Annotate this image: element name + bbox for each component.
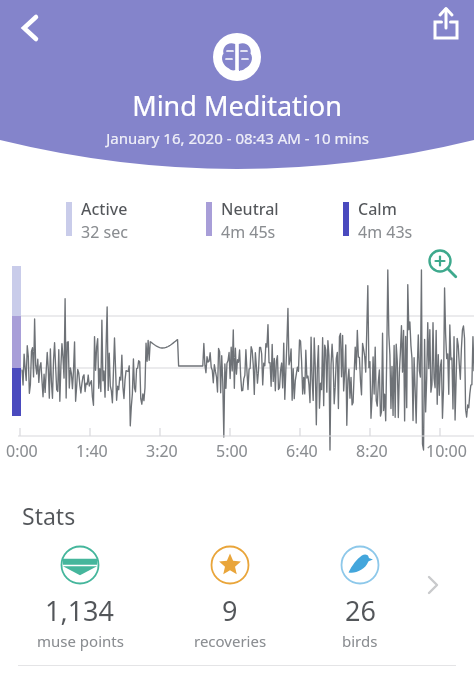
staticText: 1,134 [45, 592, 115, 629]
button[interactable]: More stats [420, 545, 474, 625]
button[interactable]: 26 [300, 545, 420, 651]
staticText: birds [342, 631, 378, 651]
button[interactable]: Share [424, 2, 468, 46]
staticText: 4m 43s [358, 221, 413, 243]
staticText: Stats [22, 500, 76, 531]
button[interactable]: Back [8, 6, 52, 50]
staticText: 26 [345, 592, 376, 629]
staticText: muse points [37, 631, 124, 651]
staticText: Calm [358, 198, 397, 220]
staticText: 5:00 [216, 440, 248, 462]
staticText: 32 sec [81, 221, 128, 243]
staticText: 4m 45s [221, 221, 276, 243]
staticText: 9 [222, 592, 238, 629]
staticText: 3:20 [146, 440, 178, 462]
button[interactable]: 9 [160, 545, 300, 651]
staticText: 1:40 [76, 440, 108, 462]
staticText: 6:40 [286, 440, 318, 462]
staticText: recoveries [194, 631, 267, 651]
staticText: Active [81, 198, 128, 220]
staticText: Mind Meditation [132, 87, 342, 124]
staticText: Neutral [221, 198, 279, 220]
button[interactable]: 1,134 [0, 545, 160, 651]
staticText: January 16, 2020 - 08:43 AM - 10 mins [106, 128, 369, 148]
button[interactable]: Zoom in [422, 242, 462, 282]
staticText: 10:00 [426, 440, 467, 462]
staticText: 0:00 [6, 440, 38, 462]
staticText: 8:20 [356, 440, 388, 462]
